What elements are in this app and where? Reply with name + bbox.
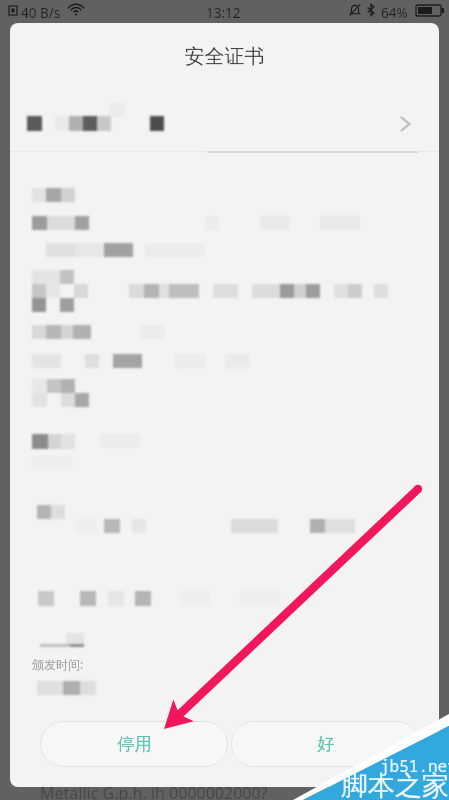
staticText: 颁发时间: xyxy=(32,656,84,672)
button[interactable]: 好 xyxy=(231,721,420,767)
button[interactable]: 展开证书详情 xyxy=(10,95,439,152)
staticText: 脚本之家 xyxy=(341,769,449,800)
button[interactable]: 展开证书详情 xyxy=(391,110,419,138)
staticText: 安全证书 xyxy=(10,44,439,69)
staticText: Metallic G.p.h. ih 0000002000? xyxy=(40,782,268,800)
staticText: 40 B/s xyxy=(21,4,61,22)
staticText: 64% xyxy=(381,4,408,22)
staticText: 停用 xyxy=(117,733,152,755)
staticText: 好 xyxy=(317,733,335,755)
button[interactable]: 停用 xyxy=(40,721,228,767)
staticText: 13:12 xyxy=(206,4,241,22)
staticText: jb51.net xyxy=(380,755,449,777)
